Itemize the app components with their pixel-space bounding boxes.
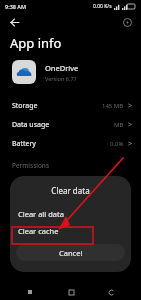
staticText: Battery: [12, 139, 36, 149]
button[interactable]: Storage: [0, 96, 141, 115]
staticText: MB: [114, 121, 124, 129]
staticText: Clear cache: [18, 226, 59, 236]
button[interactable]: Recents: [20, 284, 40, 300]
staticText: Version 6.77: [45, 75, 77, 82]
staticText: 0.00 K/s: [93, 3, 112, 10]
staticText: Permissions: [12, 161, 50, 170]
button[interactable]: Cancel: [16, 244, 125, 261]
staticText: App info: [10, 34, 62, 52]
staticText: 145 MB: [102, 102, 124, 110]
staticText: 0.0%: [110, 140, 124, 148]
staticText: Storage: [12, 101, 38, 111]
button[interactable]: Clear cache: [10, 222, 131, 239]
staticText: 9:38 AM: [5, 3, 27, 10]
staticText: Clear data: [10, 185, 131, 196]
button[interactable]: Battery: [0, 134, 141, 153]
button[interactable]: Clear all data: [10, 205, 131, 222]
button[interactable]: Back: [6, 14, 22, 30]
staticText: OneDrive: [45, 63, 79, 73]
button[interactable]: Back: [101, 284, 121, 300]
button[interactable]: Help: [119, 14, 135, 30]
staticText: Data usage: [12, 120, 50, 130]
button[interactable]: Data usage: [0, 115, 141, 134]
staticText: Cancel: [59, 248, 83, 258]
staticText: Clear all data: [18, 209, 64, 219]
button[interactable]: Home: [61, 284, 81, 300]
